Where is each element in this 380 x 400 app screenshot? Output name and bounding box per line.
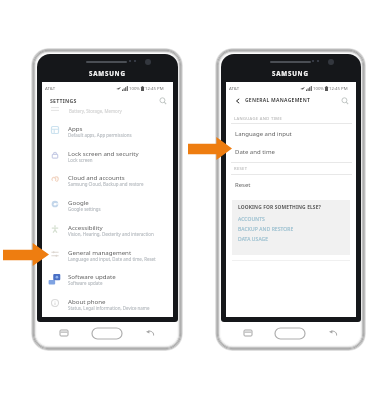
button[interactable]: About phone [42,294,173,318]
staticText: DATA USAGE [238,236,269,243]
staticText: Date and time [235,148,275,156]
staticText: About phone [68,297,106,305]
button[interactable]: DATA USAGE [238,236,269,243]
staticText: 12:45 PM [145,85,164,91]
staticText: Language and input [235,130,292,138]
staticText: Default apps, App permissions [68,132,132,138]
staticText: Accessibility [68,223,103,231]
button[interactable]: Lock screen and security [42,146,173,170]
button[interactable]: Recents [60,330,68,336]
staticText: Language and input, Date and time, Reset [68,256,156,262]
button[interactable]: Home [275,328,305,339]
staticText: AT&T [45,85,56,91]
staticText: Apps [68,124,83,132]
staticText: General management [68,248,132,256]
staticText: Battery, Storage, Memory [69,108,122,114]
button[interactable]: Language and input [226,125,356,142]
button[interactable]: Back [233,96,243,106]
button[interactable]: Recents [244,330,252,336]
staticText: Cloud and accounts [68,173,125,181]
staticText: Google settings [68,206,101,212]
staticText: SAMSUNG [89,69,126,77]
staticText: 100% [129,85,140,91]
staticText: Status, Legal information, Device name [68,305,150,311]
button[interactable]: Accessibility [42,220,173,244]
staticText: BACKUP AND RESTORE [238,226,294,233]
button[interactable]: Google [42,195,173,219]
staticText: Software update [68,280,103,286]
button[interactable]: General management [42,245,173,269]
button[interactable]: Back [329,330,337,336]
button[interactable]: Search [159,97,167,105]
staticText: RESET [234,166,248,172]
staticText: LANGUAGE AND TIME [234,116,283,122]
button[interactable]: Back [146,330,154,336]
staticText: Reset [235,181,251,189]
button[interactable]: Apps [42,121,173,145]
button[interactable]: Search [341,97,349,105]
button[interactable]: BACKUP AND RESTORE [238,226,294,233]
staticText: SETTINGS [50,97,77,104]
button[interactable]: Date and time [226,143,356,160]
staticText: ACCOUNTS [238,216,265,223]
button[interactable]: Home [92,328,122,339]
button[interactable]: Cloud and accounts [42,170,173,194]
staticText: Vision, Hearing, Dexterity and interacti… [68,231,154,237]
staticText: Lock screen [68,157,93,163]
staticText: SAMSUNG [272,69,309,77]
button[interactable]: Reset [226,176,356,193]
staticText: AT&T [229,85,240,91]
staticText: GENERAL MANAGEMENT [245,97,311,104]
button[interactable]: Software update [42,269,173,293]
staticText: Lock screen and security [68,149,139,157]
button[interactable]: ACCOUNTS [238,216,265,223]
staticText: 12:45 PM [329,85,348,91]
staticText: Samsung Cloud, Backup and restore [68,181,144,187]
staticText: 100% [313,85,324,91]
staticText: Software update [68,272,116,280]
staticText: LOOKING FOR SOMETHING ELSE? [238,204,321,211]
staticText: Google [68,198,89,206]
